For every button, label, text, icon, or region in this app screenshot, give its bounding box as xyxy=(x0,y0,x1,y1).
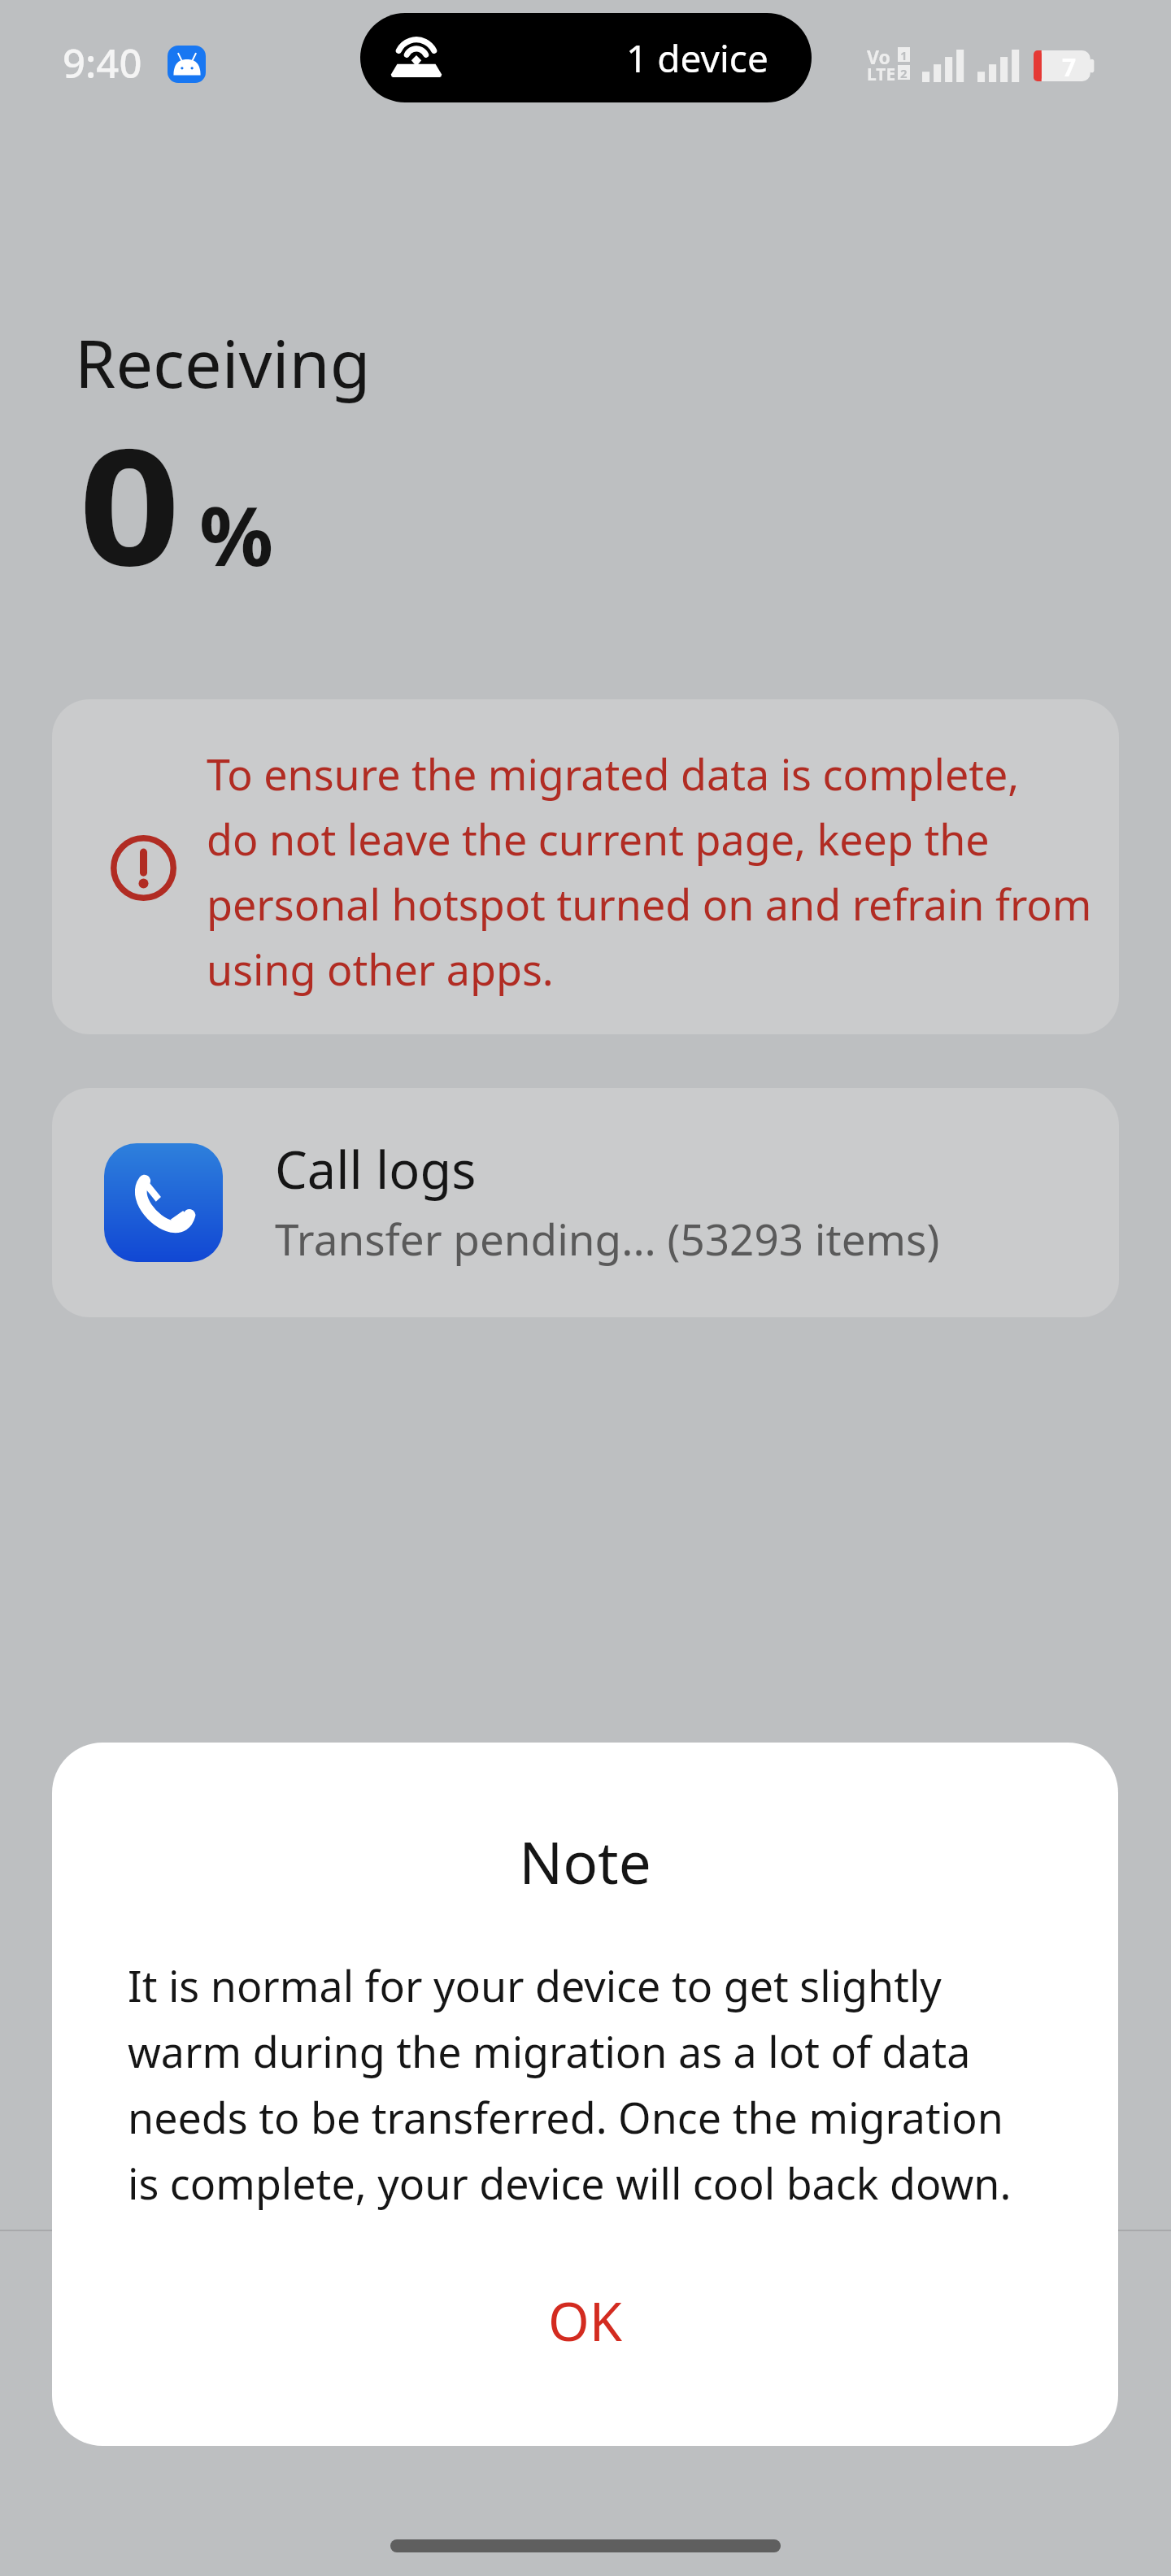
button[interactable]: Call logs xyxy=(52,1088,1119,1317)
staticText: 2 xyxy=(900,65,908,80)
staticText: OK xyxy=(548,2285,623,2357)
staticText: Call logs xyxy=(275,1134,477,1204)
staticText: 9:40 xyxy=(63,36,142,90)
button[interactable]: Personal hotspot, 1 device xyxy=(360,13,812,102)
staticText: 1 device xyxy=(626,33,768,84)
staticText: It is normal for your device to get slig… xyxy=(128,1956,1012,2212)
button[interactable]: OK xyxy=(52,2256,1118,2386)
staticText: LTE xyxy=(867,63,896,86)
staticText: Vo xyxy=(867,44,890,69)
staticText: 1 xyxy=(900,47,908,62)
staticText: Receiving xyxy=(75,317,371,407)
staticText: % xyxy=(199,478,274,590)
staticText: 7 xyxy=(1062,50,1077,81)
staticText: 0 xyxy=(79,393,181,612)
staticText: To ensure the migrated data is complete,… xyxy=(207,745,1092,998)
staticText: Transfer pending... (53293 items) xyxy=(275,1209,940,1268)
staticText: Note xyxy=(52,1822,1118,1901)
